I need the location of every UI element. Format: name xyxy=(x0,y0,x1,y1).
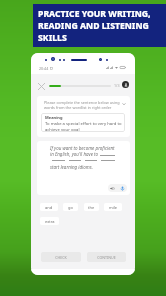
staticText: If you want to become proficient xyxy=(50,145,115,151)
staticText: start learning idioms. xyxy=(50,164,93,170)
staticText: Please complete the sentence below using… xyxy=(44,100,120,110)
staticText: go xyxy=(68,205,73,210)
button[interactable]: and xyxy=(40,203,58,211)
staticText: 1/3 xyxy=(114,83,120,88)
button[interactable]: Profile xyxy=(122,81,129,88)
staticText: and xyxy=(45,205,53,210)
staticText: extra xyxy=(45,219,55,224)
staticText: CONTINUE xyxy=(97,255,116,260)
staticText: the xyxy=(88,205,95,210)
button[interactable]: mile xyxy=(104,203,122,211)
button[interactable]: CONTINUE xyxy=(87,252,126,262)
staticText: mile xyxy=(109,205,118,210)
staticText: Meaning xyxy=(45,115,63,120)
button[interactable]: extra xyxy=(40,217,59,225)
button[interactable]: Listen and record xyxy=(108,184,127,192)
staticText: in English, you'll have to xyxy=(50,151,100,157)
button[interactable]: CHECK xyxy=(41,252,81,262)
button[interactable]: Close xyxy=(36,81,46,91)
staticText: To make a special effort to very hard to… xyxy=(45,121,122,132)
button[interactable]: the xyxy=(84,203,99,211)
staticText: CHECK xyxy=(55,255,67,260)
button[interactable]: go xyxy=(63,203,78,211)
staticText: PRACTICE YOUR WRITING, READING AND LISTE… xyxy=(38,8,151,44)
staticText: 20:44 xyxy=(39,66,49,71)
